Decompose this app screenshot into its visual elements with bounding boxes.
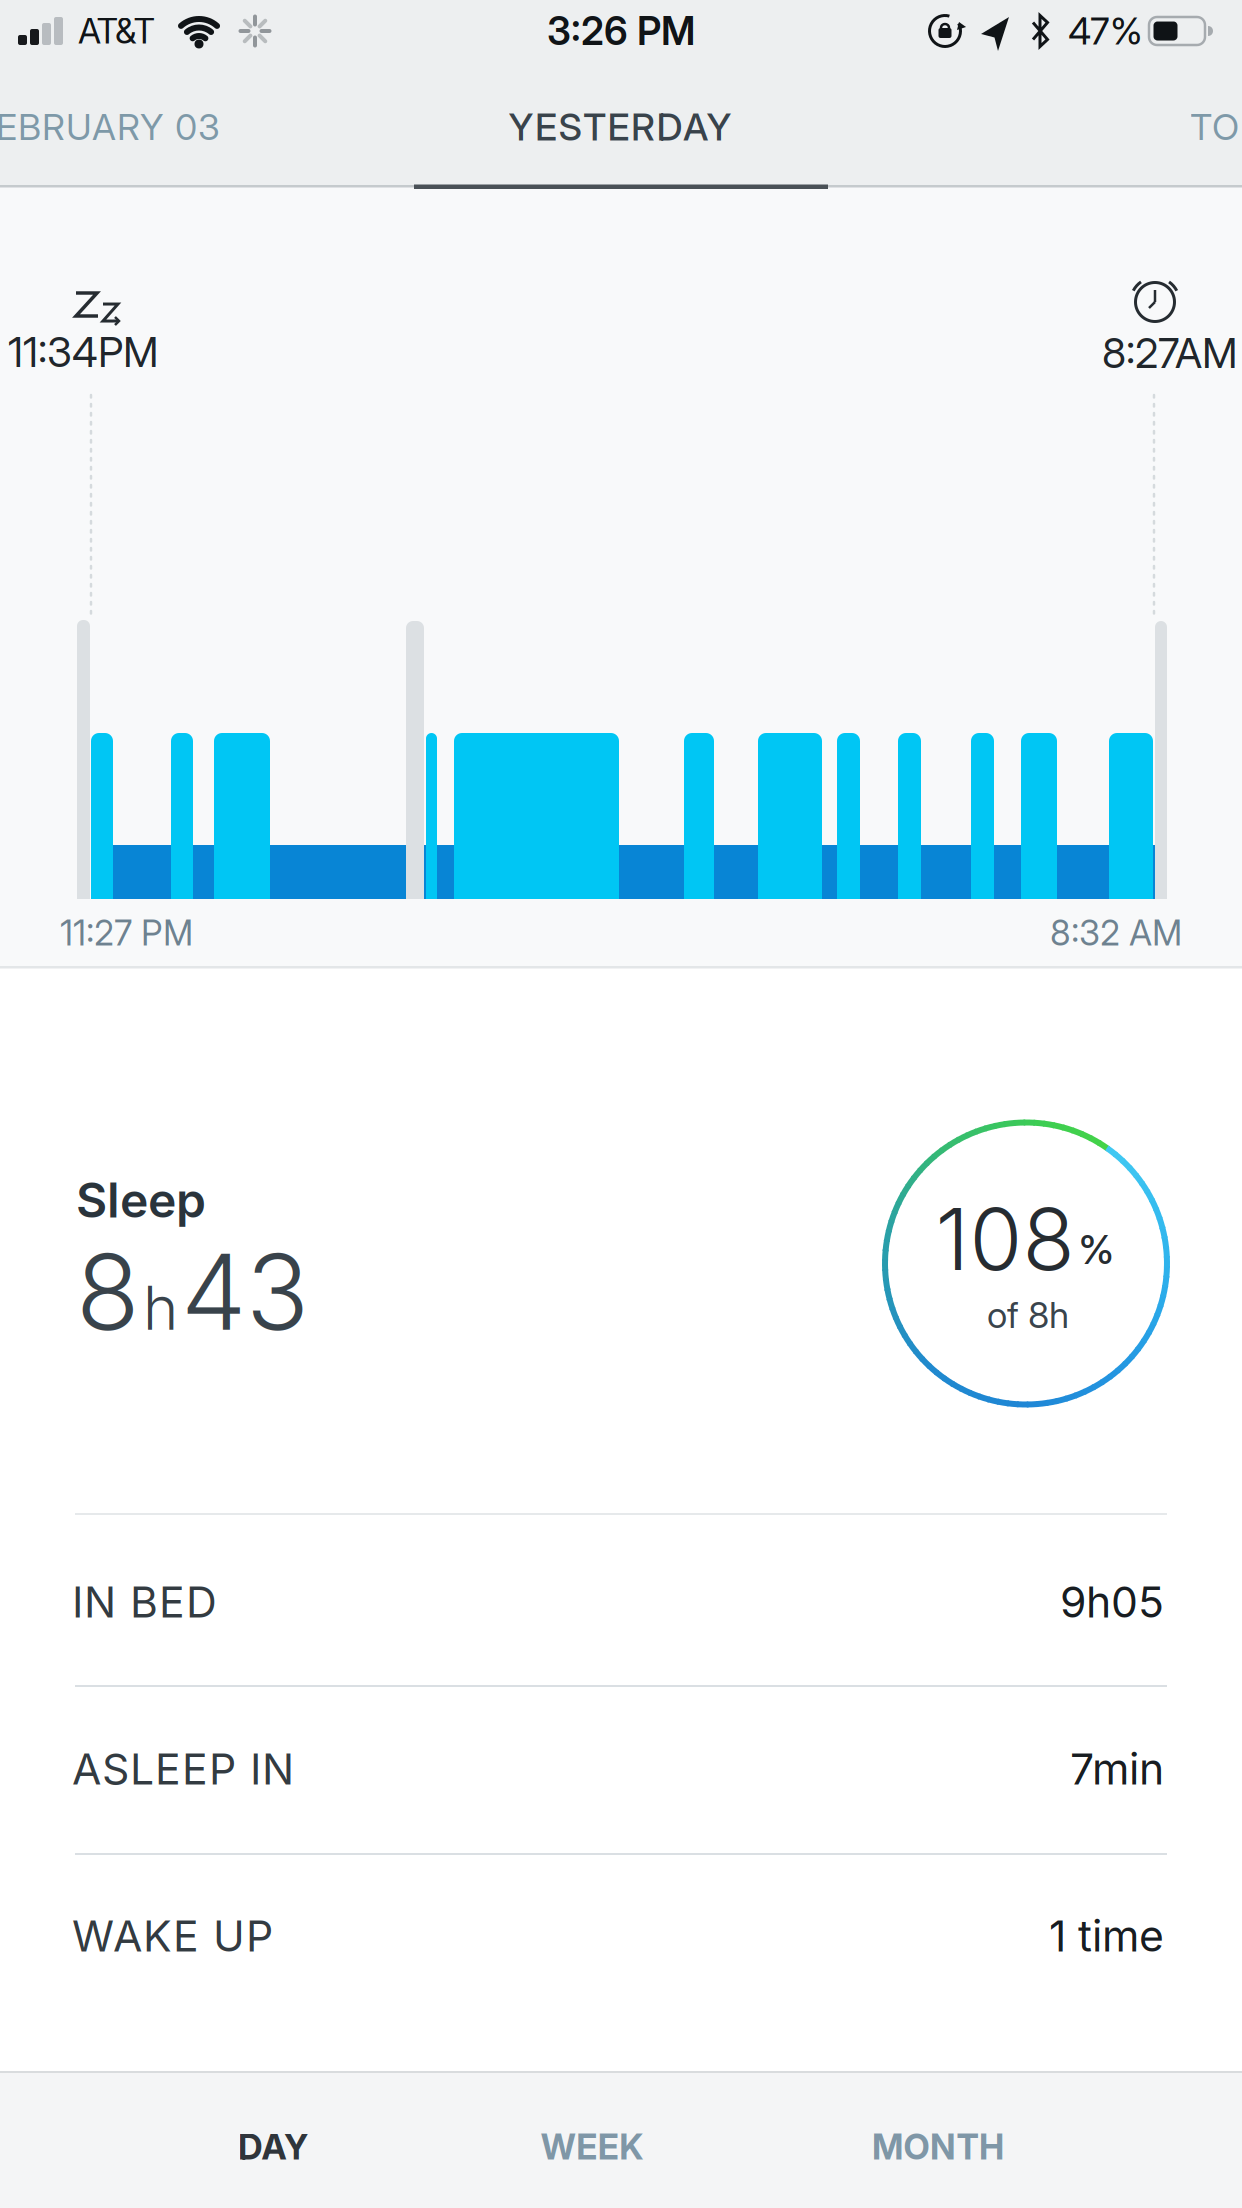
staticText: 8:32 AM bbox=[1050, 912, 1182, 954]
staticText: of 8h bbox=[987, 1293, 1069, 1337]
button[interactable]: WEEK bbox=[422, 2079, 762, 2208]
staticText: 1 time bbox=[1049, 1910, 1164, 1962]
staticText: TODAY bbox=[1190, 105, 1242, 149]
staticText: WEEK bbox=[541, 2126, 643, 2168]
staticText: 7min bbox=[1070, 1743, 1164, 1795]
staticText: 43 bbox=[181, 1229, 309, 1355]
staticText: Sleep bbox=[76, 1171, 206, 1229]
staticText: AT&T bbox=[78, 10, 155, 52]
staticText: YESTERDAY bbox=[508, 104, 731, 150]
staticText: IN BED bbox=[72, 1576, 217, 1628]
staticText: DAY bbox=[238, 2126, 308, 2168]
staticText: 8 bbox=[76, 1229, 140, 1355]
staticText: 108 bbox=[935, 1187, 1074, 1291]
staticText: 9h05 bbox=[1060, 1576, 1164, 1628]
button[interactable]: DAY bbox=[103, 2079, 443, 2208]
staticText: 11:34PM bbox=[8, 327, 159, 377]
staticText: 8:27AM bbox=[1102, 328, 1238, 378]
staticText: MONTH bbox=[872, 2126, 1004, 2168]
staticText: FEBRUARY 03 bbox=[0, 105, 220, 149]
staticText: ASLEEP IN bbox=[72, 1743, 294, 1795]
staticText: WAKE UP bbox=[72, 1910, 273, 1962]
staticText: 47% bbox=[1068, 8, 1143, 54]
button[interactable]: TODAY bbox=[1190, 79, 1242, 175]
staticText: h bbox=[143, 1272, 178, 1344]
button[interactable]: MONTH bbox=[768, 2079, 1108, 2208]
staticText: 3:26 PM bbox=[547, 8, 695, 54]
button[interactable]: FEBRUARY 03 bbox=[0, 79, 435, 175]
staticText: % bbox=[1078, 1225, 1114, 1274]
staticText: 11:27 PM bbox=[60, 912, 193, 954]
